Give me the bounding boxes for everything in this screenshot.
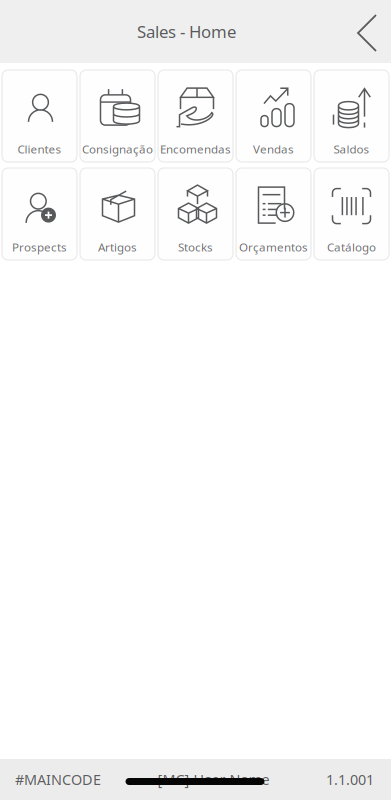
staticText: Encomendas	[160, 141, 231, 157]
button[interactable]: Encomendas	[158, 70, 233, 162]
staticText: Sales - Home	[137, 20, 236, 43]
staticText: Orçamentos	[239, 239, 308, 255]
staticText: Saldos	[333, 141, 369, 157]
button[interactable]: Stocks	[158, 168, 233, 260]
staticText: Catálogo	[327, 239, 376, 255]
button[interactable]: Vendas	[236, 70, 311, 162]
staticText: Clientes	[17, 141, 61, 157]
staticText: #MAINCODE	[15, 770, 101, 789]
staticText: 1.1.001	[326, 770, 374, 789]
staticText: [MC] User Name	[157, 770, 269, 789]
button[interactable]: Orçamentos	[236, 168, 311, 260]
staticText: Vendas	[253, 141, 294, 157]
staticText: Prospects	[12, 239, 67, 255]
button[interactable]: Catálogo	[314, 168, 389, 260]
button[interactable]: Back	[342, 10, 391, 53]
button[interactable]: Consignação	[80, 70, 155, 162]
staticText: Artigos	[98, 239, 137, 255]
button[interactable]: Artigos	[80, 168, 155, 260]
button[interactable]: Clientes	[2, 70, 77, 162]
staticText: Consignação	[82, 141, 153, 157]
button[interactable]: Prospects	[2, 168, 77, 260]
staticText: Stocks	[178, 239, 213, 255]
button[interactable]: Saldos	[314, 70, 389, 162]
